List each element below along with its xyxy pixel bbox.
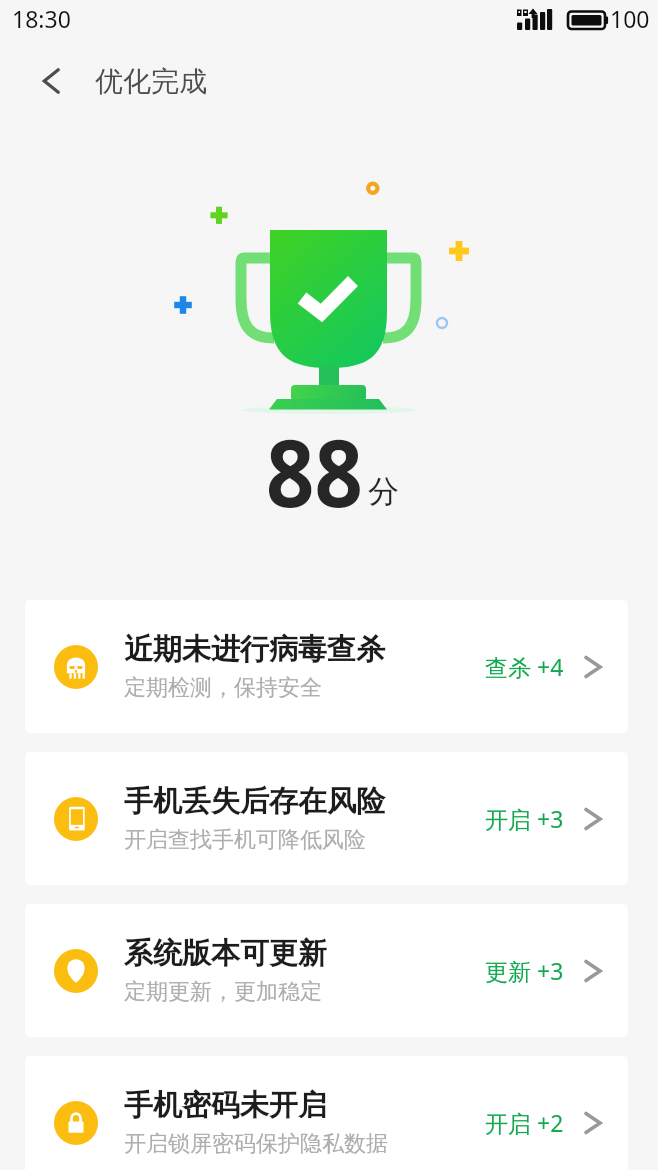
staticText: 近期未进行病毒查杀	[124, 631, 385, 668]
staticText: 查杀 +4	[485, 651, 564, 682]
staticText: 优化完成	[95, 64, 207, 99]
button[interactable]: 手机密码未开启	[25, 1056, 628, 1170]
staticText: 系统版本可更新	[124, 935, 327, 972]
staticText: 更新 +3	[485, 955, 564, 986]
staticText: 定期更新，更加稳定	[124, 978, 322, 1006]
button[interactable]: 近期未进行病毒查杀	[25, 600, 628, 733]
staticText: 手机丢失后存在风险	[124, 783, 385, 820]
staticText: 分	[368, 472, 399, 511]
staticText: 开启 +3	[485, 803, 564, 834]
button[interactable]: Back	[28, 58, 74, 104]
staticText: 88	[266, 407, 363, 535]
button[interactable]: 手机丢失后存在风险	[25, 752, 628, 885]
staticText: 定期检测，保持安全	[124, 674, 322, 702]
staticText: 开启查找手机可降低风险	[124, 826, 366, 854]
staticText: 手机密码未开启	[124, 1087, 327, 1124]
staticText: 开启锁屏密码保护隐私数据	[124, 1130, 388, 1158]
staticText: 100	[610, 3, 650, 34]
staticText: 开启 +2	[485, 1107, 564, 1138]
button[interactable]: 系统版本可更新	[25, 904, 628, 1037]
staticText: 18:30	[12, 3, 71, 34]
